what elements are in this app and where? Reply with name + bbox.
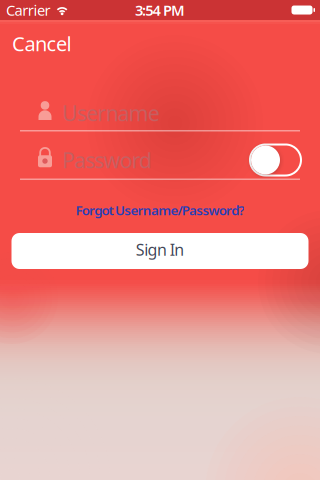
button[interactable]: Cancel (12, 29, 71, 55)
button[interactable]: Save password (250, 144, 301, 175)
staticText: 3:54 PM (135, 0, 185, 20)
staticText: Username (62, 99, 160, 127)
staticText: Cancel (12, 30, 71, 57)
staticText: Password (62, 146, 152, 174)
staticText: Carrier (6, 0, 51, 20)
staticText: Sign In (136, 239, 184, 260)
button[interactable]: Sign In (11, 233, 308, 269)
button[interactable]: Forgot Username/Password? (76, 201, 244, 219)
staticText: Forgot Username/Password? (76, 201, 244, 219)
